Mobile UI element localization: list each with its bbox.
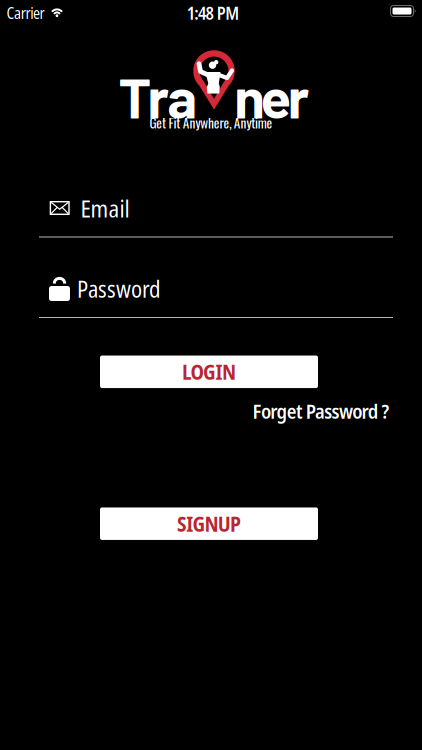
button[interactable]: Forget Password ? <box>253 397 389 425</box>
staticText: Carrier <box>6 3 45 23</box>
button[interactable]: Email <box>0 183 422 245</box>
button[interactable]: LOGIN <box>100 356 318 388</box>
staticText: Forget Password ? <box>253 397 389 425</box>
staticText: ner <box>234 62 309 130</box>
button[interactable]: Password <box>0 259 422 321</box>
staticText: LOGIN <box>182 358 236 386</box>
staticText: Get Fit Anywhere, Anytime <box>149 113 273 132</box>
staticText: SIGNUP <box>177 510 241 538</box>
staticText: Tra <box>118 62 197 130</box>
staticText: Email <box>80 193 129 224</box>
staticText: 1:48 PM <box>187 1 239 25</box>
button[interactable]: SIGNUP <box>100 507 318 540</box>
staticText: Password <box>77 274 161 304</box>
